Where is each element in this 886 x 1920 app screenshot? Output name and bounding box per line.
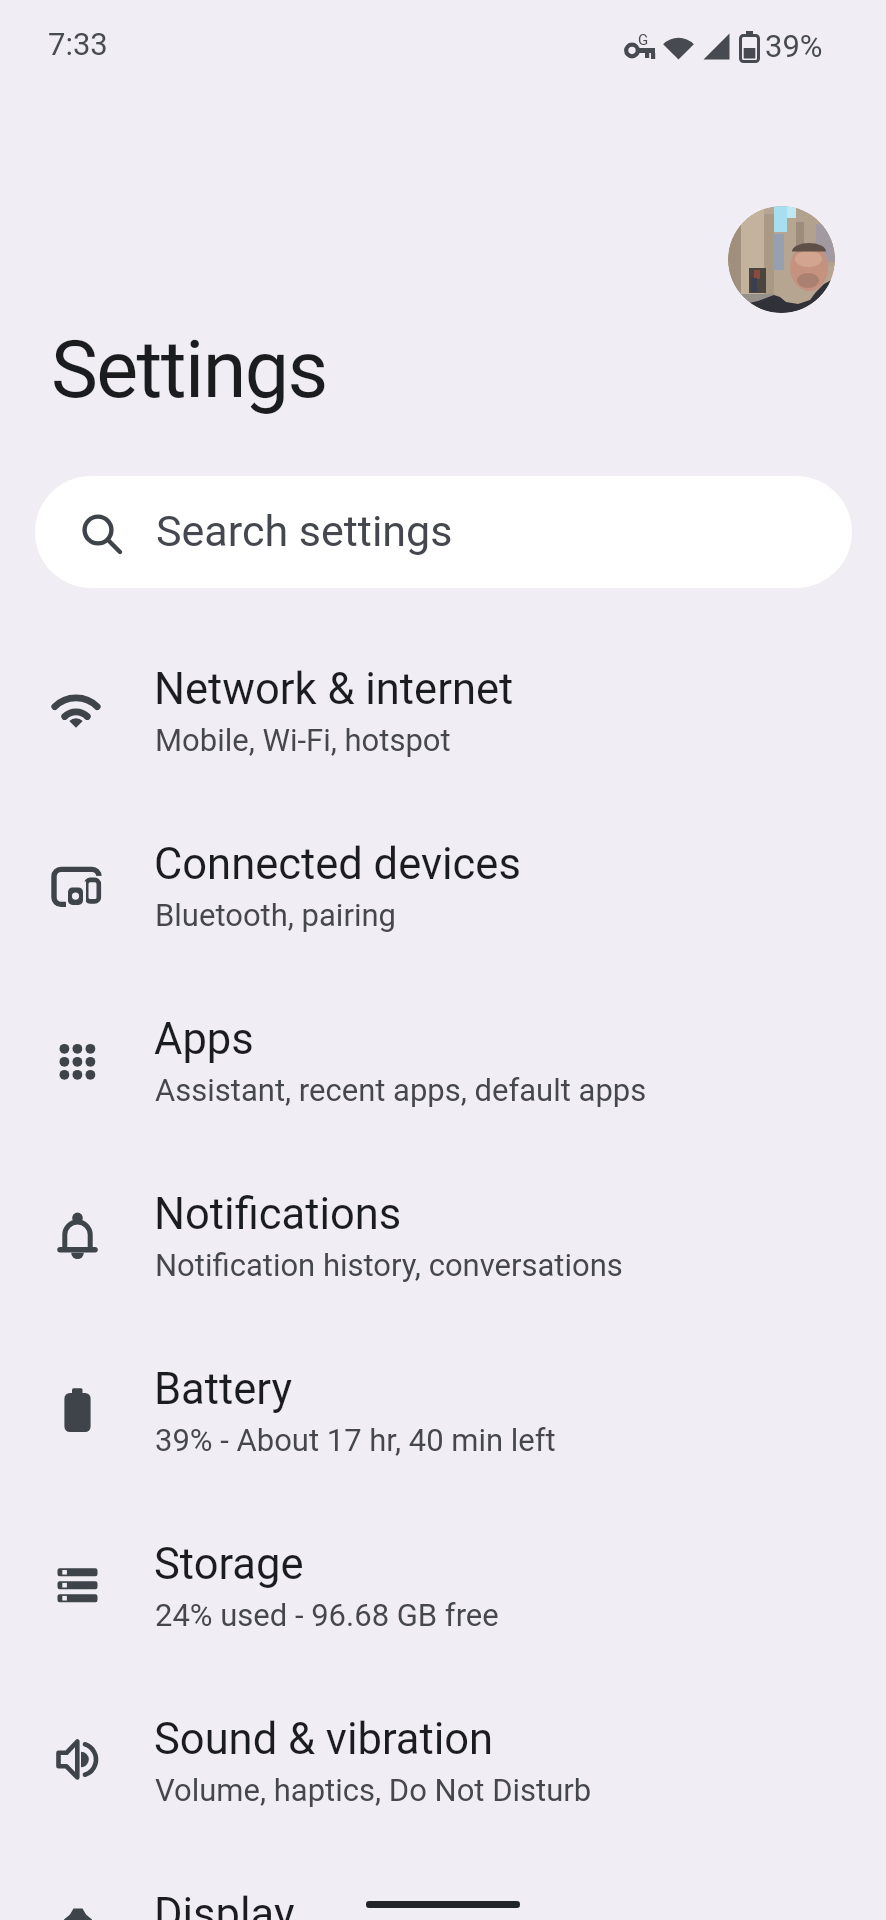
staticText: Notification history, conversations <box>155 1247 623 1283</box>
button[interactable]: Display <box>0 1848 886 1920</box>
staticText: 24% used - 96.68 GB free <box>155 1597 499 1633</box>
staticText: 39% <box>765 28 823 64</box>
button[interactable]: Notifications <box>0 1148 886 1323</box>
staticText: Assistant, recent apps, default apps <box>155 1072 647 1108</box>
button[interactable]: Apps <box>0 973 886 1148</box>
staticText: Bluetooth, pairing <box>155 897 396 933</box>
staticText: Network & internet <box>154 664 514 715</box>
staticText: 39% - About 17 hr, 40 min left <box>155 1422 556 1458</box>
staticText: Volume, haptics, Do Not Disturb <box>155 1772 592 1808</box>
button[interactable] <box>728 206 835 313</box>
staticText: Notifications <box>154 1189 402 1240</box>
staticText: Settings <box>51 324 327 417</box>
staticText: Storage <box>154 1539 304 1590</box>
button[interactable]: Sound & vibration <box>0 1673 886 1848</box>
button[interactable]: Storage <box>0 1498 886 1673</box>
staticText: Sound & vibration <box>154 1714 494 1765</box>
staticText: Apps <box>154 1014 254 1065</box>
button[interactable]: Network & internet <box>0 623 886 798</box>
staticText: Search settings <box>156 506 453 556</box>
button[interactable]: Search settings <box>35 476 852 588</box>
staticText: G <box>638 31 649 49</box>
staticText: Connected devices <box>154 839 521 890</box>
staticText: Display <box>154 1889 295 1920</box>
button[interactable]: Battery <box>0 1323 886 1498</box>
button[interactable]: Connected devices <box>0 798 886 973</box>
staticText: Battery <box>154 1364 292 1415</box>
staticText: 7:33 <box>48 26 108 62</box>
staticText: Mobile, Wi-Fi, hotspot <box>155 722 451 758</box>
